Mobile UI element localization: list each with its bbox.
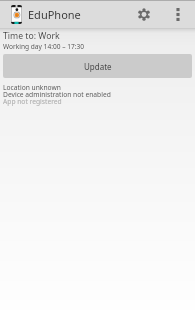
staticText: App not registered [3, 97, 62, 106]
button[interactable]: Update [3, 54, 192, 78]
staticText: EduPhone [28, 7, 81, 22]
staticText: Device administration not enabled [3, 90, 111, 99]
button[interactable]: More options [163, 0, 193, 28]
staticText: Time to: Work [3, 30, 60, 42]
staticText: Working day 14:00 – 17:30 [3, 42, 85, 51]
staticText: Update [84, 61, 112, 72]
staticText: Location unknown [3, 83, 61, 92]
button[interactable]: Settings [127, 0, 161, 28]
